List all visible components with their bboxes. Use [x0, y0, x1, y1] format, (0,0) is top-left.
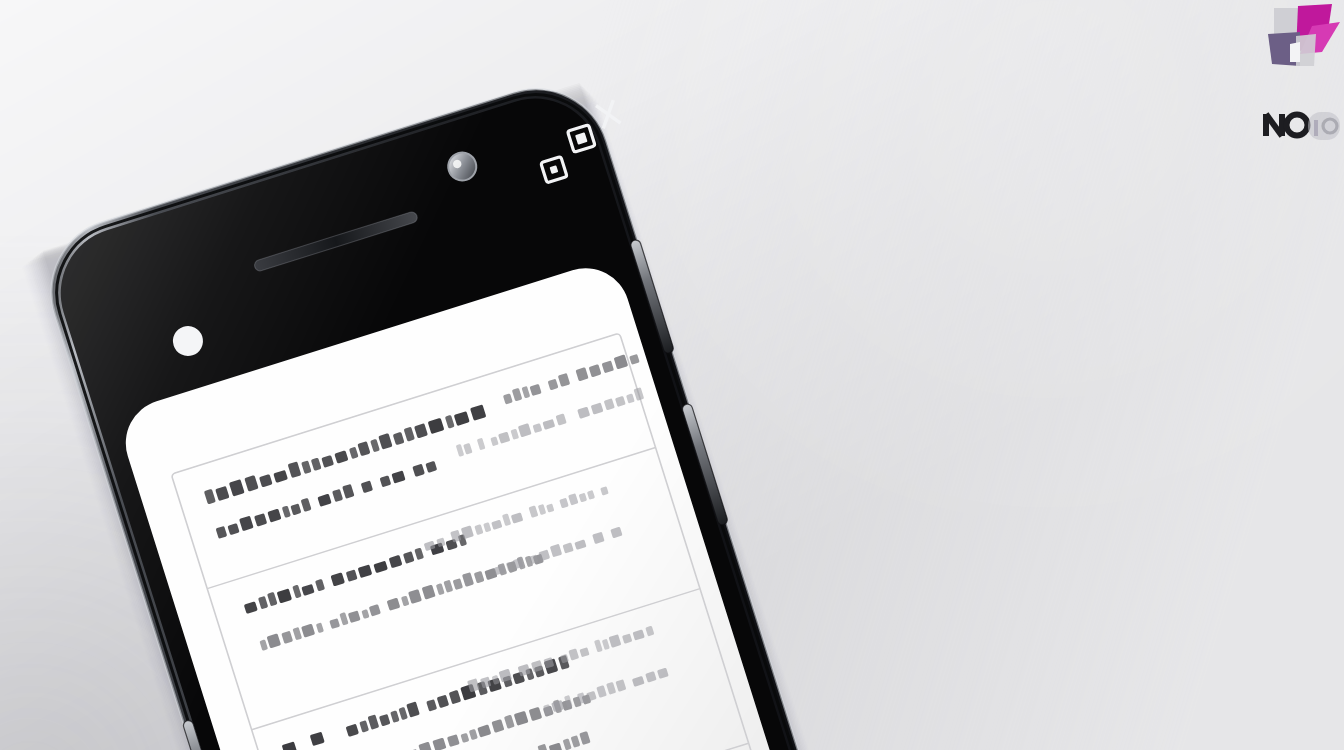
button[interactable]: Smartphone showing a list screen: [0, 0, 1344, 750]
